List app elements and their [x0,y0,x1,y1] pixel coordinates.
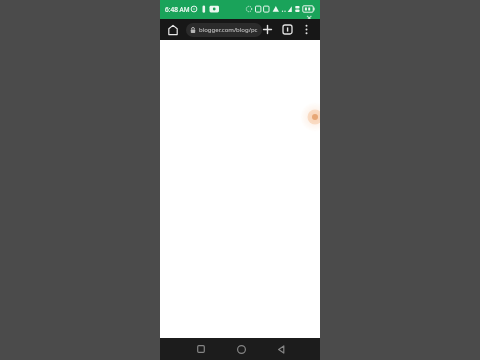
button[interactable] [167,24,179,36]
button[interactable] [189,338,213,360]
staticText: blogger.com/blog/pc [199,26,258,34]
staticText: 6:48 AM [165,5,190,14]
button[interactable] [229,338,253,360]
button[interactable] [269,338,293,360]
button[interactable]: blogger.com/blog/pc [190,23,258,37]
